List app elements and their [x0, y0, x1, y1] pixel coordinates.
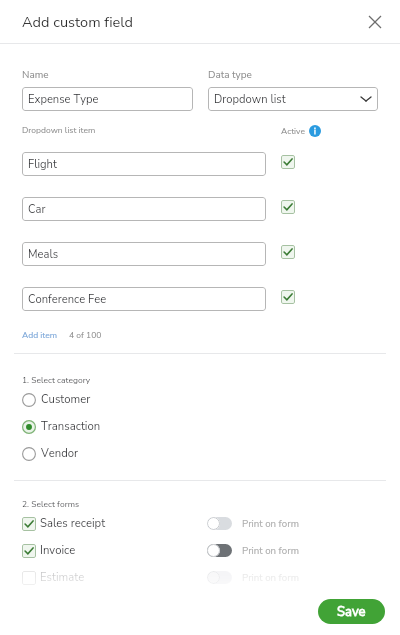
- staticText: Sales receipt: [40, 516, 106, 531]
- staticText: Car: [28, 202, 46, 217]
- button[interactable]: Meals: [22, 242, 266, 266]
- staticText: Add item: [22, 329, 58, 341]
- button[interactable]: Close: [362, 9, 388, 35]
- other: Radio: [22, 447, 36, 461]
- button[interactable]: Radio: [22, 392, 91, 407]
- staticText: Add custom field: [22, 12, 133, 32]
- button[interactable]: Checked: [281, 155, 295, 169]
- button[interactable]: Radio: [22, 419, 101, 434]
- button[interactable]: Checked: [22, 543, 76, 558]
- button[interactable]: Checked: [22, 544, 36, 558]
- button[interactable]: Checked: [281, 290, 295, 304]
- button[interactable]: Unchecked: [22, 571, 36, 585]
- staticText: Invoice: [40, 543, 76, 558]
- button[interactable]: Checked: [22, 516, 106, 531]
- button[interactable]: Checked: [281, 245, 295, 259]
- staticText: Estimate: [40, 570, 85, 585]
- staticText: Conference Fee: [28, 292, 107, 307]
- button[interactable]: Flight: [22, 152, 266, 176]
- button[interactable]: Unchecked: [22, 570, 85, 585]
- button[interactable]: Info: [309, 125, 321, 137]
- staticText: 2. Select forms: [22, 498, 80, 510]
- staticText: Save: [337, 603, 366, 621]
- staticText: Dropdown list: [214, 92, 286, 107]
- staticText: Active: [281, 125, 305, 137]
- button[interactable]: Radio: [22, 446, 79, 461]
- button[interactable]: Conference Fee: [22, 287, 266, 311]
- staticText: Transaction: [41, 419, 101, 434]
- button[interactable]: Dropdown list: [208, 87, 378, 111]
- button[interactable]: Checked: [22, 517, 36, 531]
- other: Radio: [22, 420, 36, 434]
- staticText: Print on form: [242, 571, 299, 584]
- other: Radio: [22, 393, 36, 407]
- button[interactable]: Checked: [281, 200, 295, 214]
- button[interactable]: Save: [318, 599, 385, 624]
- staticText: Print on form: [242, 517, 299, 530]
- button[interactable]: Print on form toggle: [207, 517, 232, 530]
- staticText: 4 of 100: [69, 329, 102, 341]
- staticText: Vendor: [41, 446, 79, 461]
- button[interactable]: Print on form toggle: [207, 544, 232, 557]
- staticText: i: [314, 126, 316, 137]
- staticText: Dropdown list item: [22, 124, 96, 136]
- staticText: Flight: [28, 157, 57, 172]
- staticText: Customer: [41, 392, 91, 407]
- staticText: Expense Type: [28, 92, 99, 107]
- staticText: Print on form: [242, 544, 299, 557]
- button[interactable]: Add item: [22, 329, 58, 341]
- button[interactable]: Car: [22, 197, 266, 221]
- staticText: Meals: [28, 247, 59, 262]
- button[interactable]: Print on form toggle: [207, 571, 232, 584]
- staticText: 1. Select category: [22, 374, 91, 386]
- button[interactable]: Expense Type: [22, 87, 193, 111]
- staticText: Data type: [208, 68, 252, 82]
- staticText: Name: [22, 68, 49, 82]
